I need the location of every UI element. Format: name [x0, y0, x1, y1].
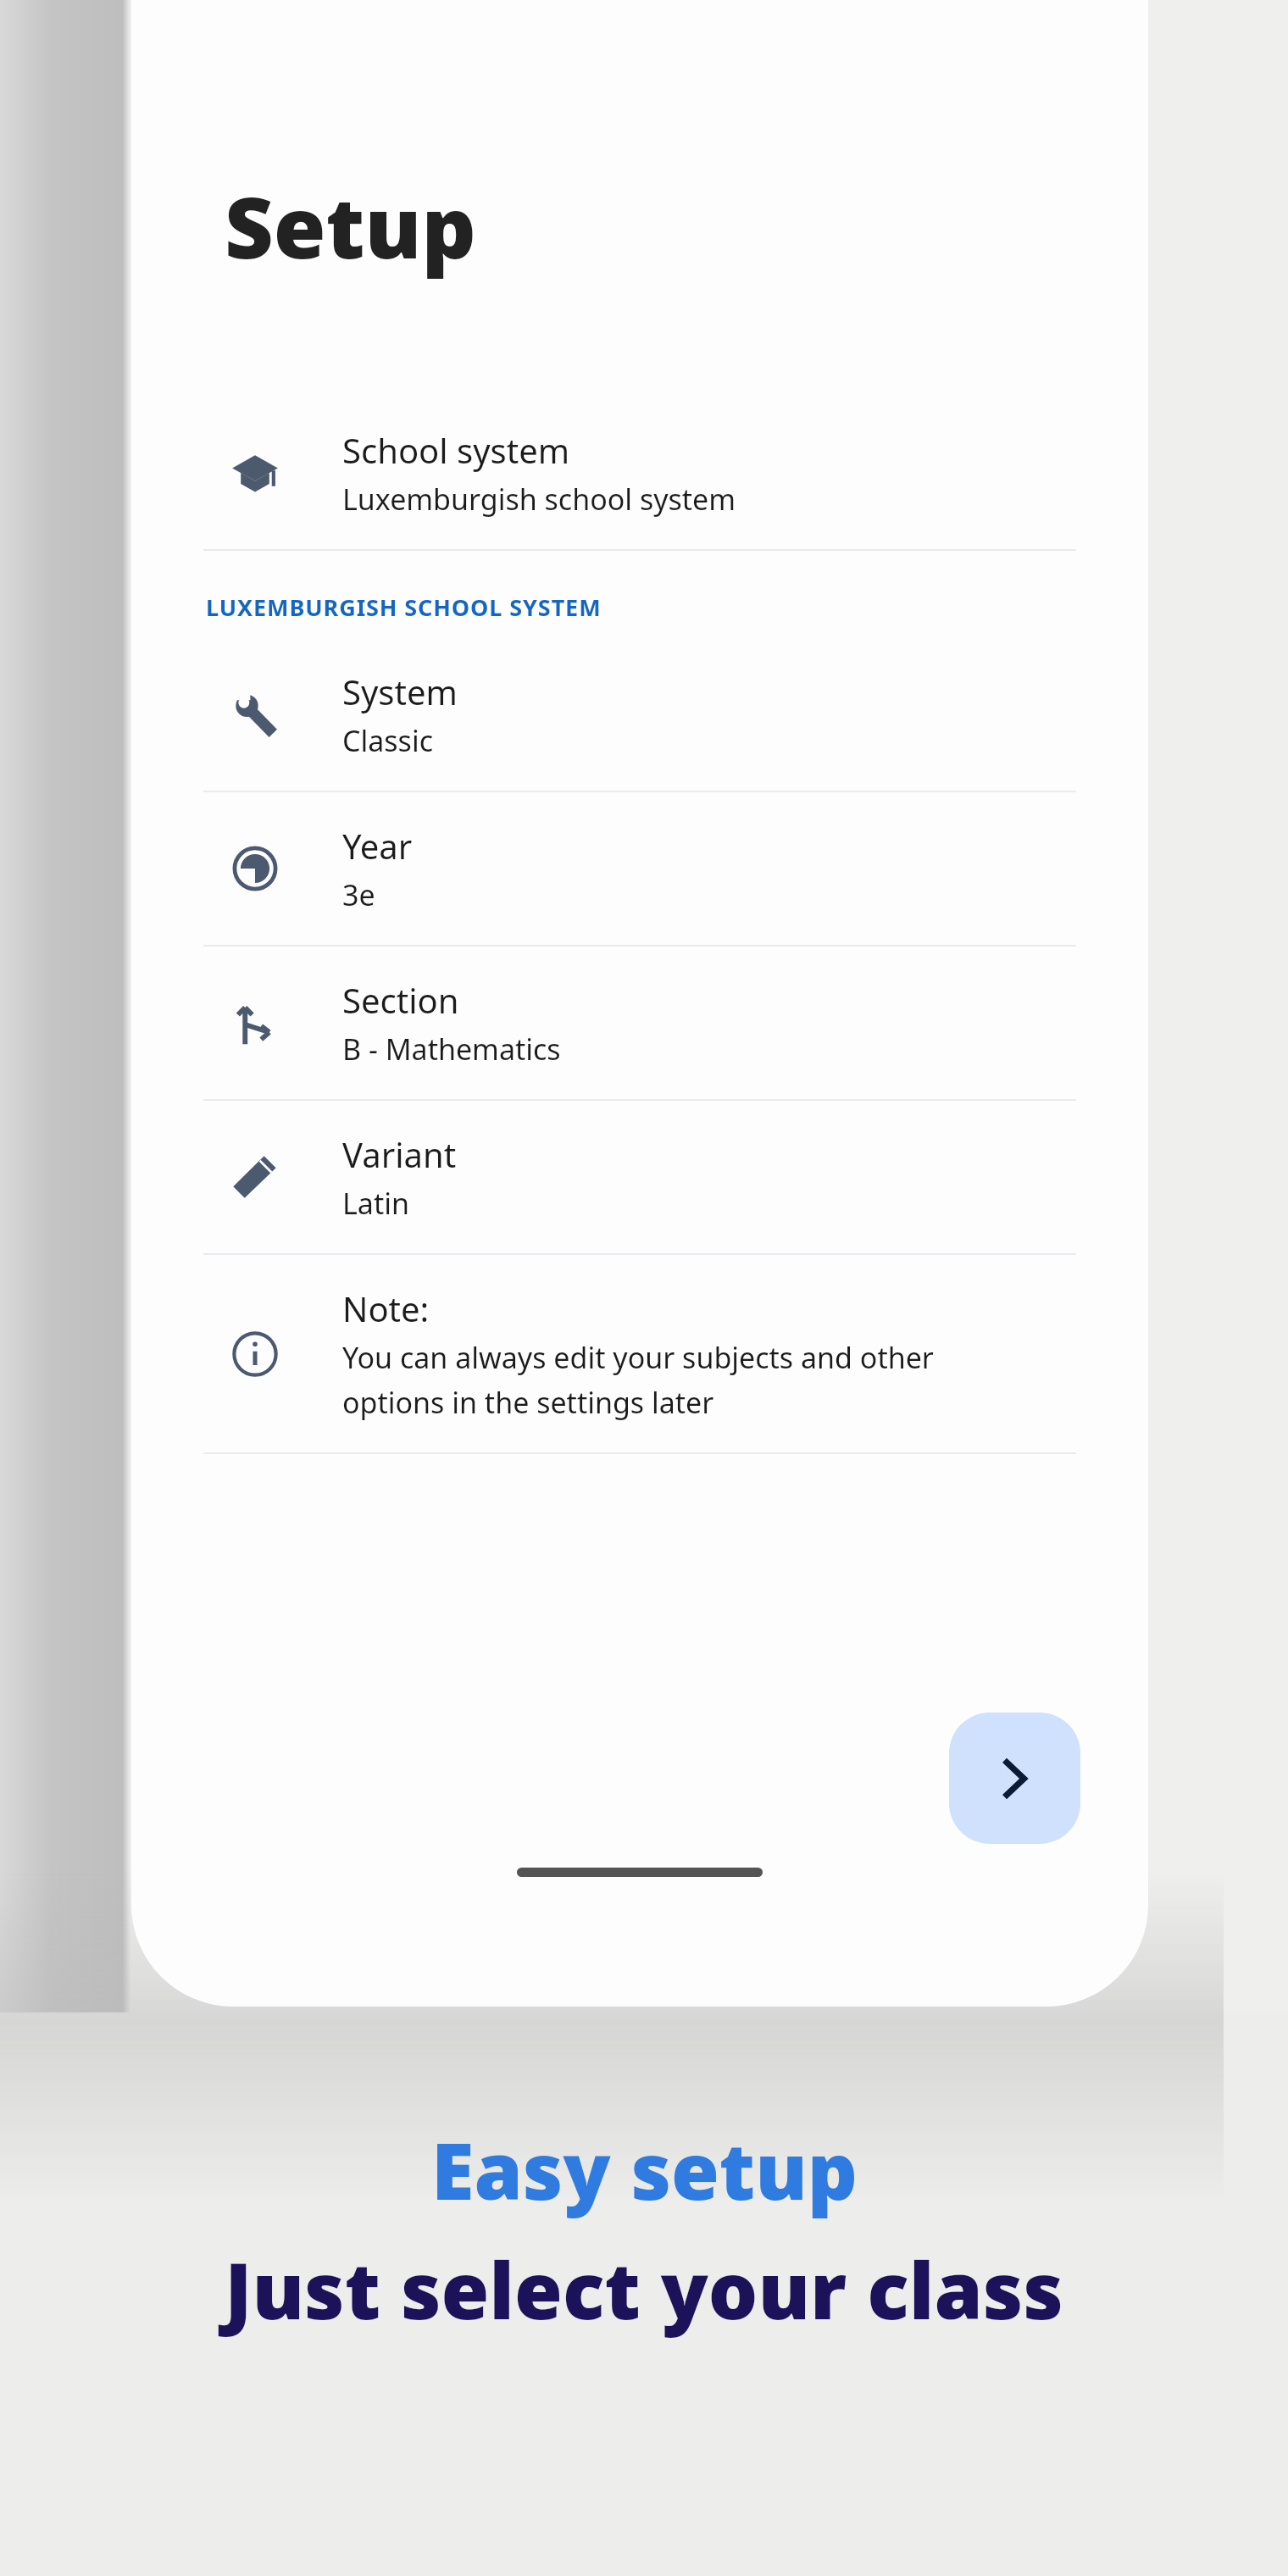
button[interactable]: Next — [949, 1713, 1080, 1844]
staticText: Note: — [342, 1285, 430, 1331]
staticText: B - Mathematics — [342, 1030, 952, 1069]
staticText: Setup — [225, 168, 476, 283]
staticText: School system — [342, 427, 570, 473]
button[interactable]: Note: — [131, 1255, 1148, 1452]
staticText: Luxemburgish school system — [342, 480, 952, 519]
button[interactable]: Section — [131, 947, 1148, 1099]
staticText: Easy setup — [431, 2117, 858, 2223]
staticText: You can always edit your subjects and ot… — [342, 1338, 952, 1422]
button[interactable]: Year — [131, 792, 1148, 945]
staticText: Latin — [342, 1184, 952, 1223]
button[interactable]: School system — [131, 397, 1148, 549]
staticText: LUXEMBURGISH SCHOOL SYSTEM — [206, 591, 602, 623]
staticText: 3e — [342, 875, 952, 914]
staticText: Classic — [342, 721, 952, 760]
button[interactable]: System — [131, 638, 1148, 791]
button[interactable]: Variant — [131, 1101, 1148, 1253]
staticText: Year — [342, 823, 413, 869]
staticText: System — [342, 669, 458, 714]
staticText: Variant — [342, 1131, 457, 1177]
staticText: Section — [342, 977, 459, 1023]
staticText: Just select your class — [225, 2236, 1063, 2342]
